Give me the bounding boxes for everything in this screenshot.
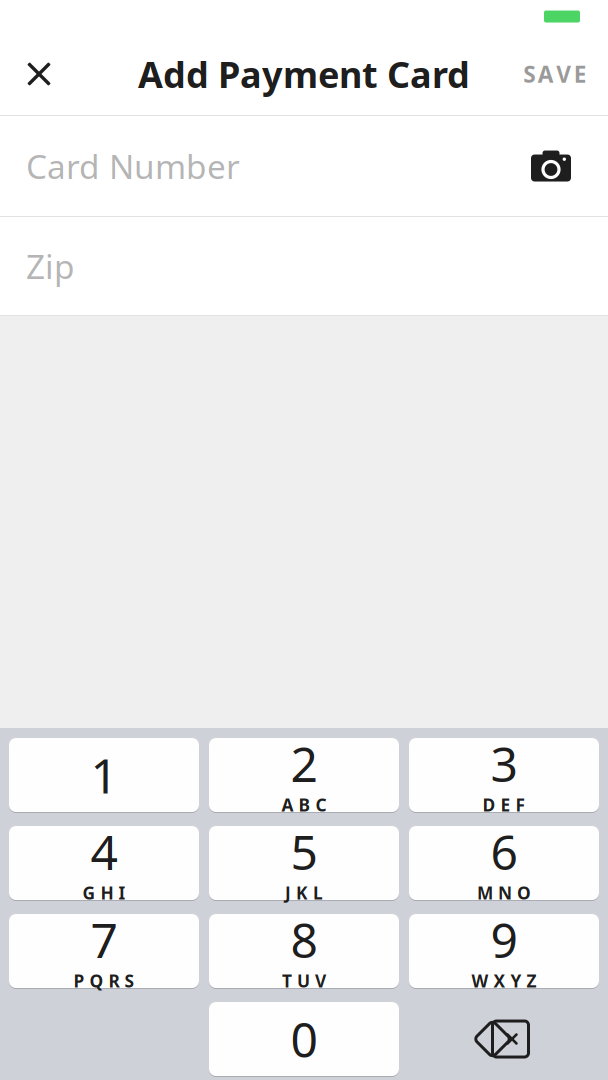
button[interactable]: 6	[409, 825, 599, 901]
button[interactable]: Scan card with camera	[514, 116, 588, 216]
staticText: 2	[290, 732, 317, 795]
staticText: A B C	[281, 793, 326, 816]
button[interactable]: 5	[209, 825, 399, 901]
staticText: W X Y Z	[471, 969, 536, 992]
staticText: Zip	[26, 244, 75, 288]
staticText: 1	[90, 743, 117, 807]
staticText: D E F	[482, 793, 525, 816]
staticText: G H I	[82, 881, 125, 904]
button[interactable]: 9	[409, 913, 599, 989]
button[interactable]: 1	[9, 737, 199, 813]
staticText: E	[574, 59, 587, 89]
staticText: 9	[490, 908, 517, 971]
button[interactable]: Close	[0, 33, 78, 115]
staticText: 3	[490, 732, 517, 795]
button[interactable]: 3	[409, 737, 599, 813]
staticText: A	[538, 59, 554, 89]
staticText: 4	[90, 820, 117, 883]
staticText: S	[523, 59, 535, 89]
staticText: 7	[90, 908, 117, 971]
button[interactable]: 4	[9, 825, 199, 901]
staticText: V	[556, 59, 571, 89]
button[interactable]: 0	[209, 1001, 399, 1077]
staticText: J K L	[285, 881, 323, 904]
staticText: M N O	[477, 881, 531, 904]
staticText: 0	[290, 1007, 317, 1071]
staticText: P Q R S	[73, 969, 134, 992]
button[interactable]: S	[502, 33, 608, 115]
staticText: Card Number	[26, 144, 240, 188]
button[interactable]: 7	[9, 913, 199, 989]
button[interactable]: 8	[209, 913, 399, 989]
staticText: 8	[290, 908, 317, 971]
staticText: 6	[490, 820, 517, 883]
staticText: Add Payment Card	[138, 50, 470, 98]
button[interactable]: 2	[209, 737, 399, 813]
staticText: T U V	[282, 969, 326, 992]
button[interactable]: Delete	[409, 1002, 599, 1076]
staticText: 5	[290, 820, 317, 883]
